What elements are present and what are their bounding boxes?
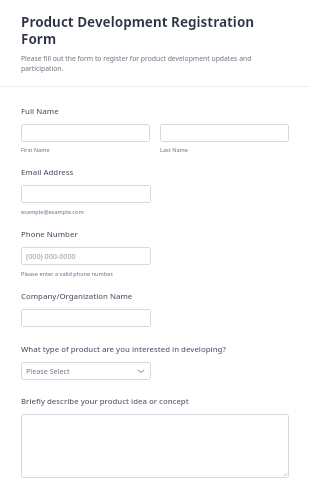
staticText: (000) 000-0000 (26, 251, 76, 261)
staticText: Please Select (26, 366, 70, 376)
staticText: First Name (21, 146, 50, 154)
staticText: Email Address (21, 167, 74, 178)
button[interactable]: Please Select (21, 362, 151, 380)
button[interactable] (160, 124, 289, 142)
button[interactable] (21, 185, 151, 203)
button[interactable] (21, 124, 150, 142)
button[interactable] (21, 309, 151, 327)
staticText: Please enter a valid phone number. (21, 270, 114, 278)
staticText: Product Development Registration Form (21, 13, 289, 48)
staticText: example@example.com (21, 208, 84, 216)
button[interactable]: (000) 000-0000 (21, 247, 151, 265)
button[interactable] (21, 414, 289, 478)
staticText: Please fill out the form to register for… (21, 54, 289, 73)
staticText: What type of product are you interested … (21, 344, 226, 355)
staticText: Full Name (21, 106, 59, 117)
staticText: Last Name (160, 146, 188, 154)
staticText: Phone Number (21, 229, 78, 240)
staticText: Company/Organization Name (21, 291, 133, 302)
staticText: Briefly describe your product idea or co… (21, 396, 189, 407)
